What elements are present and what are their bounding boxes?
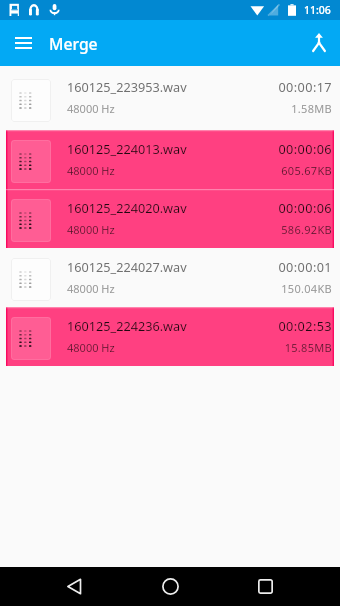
staticText: 48000 Hz [67,163,115,178]
staticText: 160125_224013.wav [67,140,187,157]
staticText: 48000 Hz [67,222,115,237]
staticText: 48000 Hz [67,281,115,296]
staticText: 160125_224236.wav [67,317,187,334]
button[interactable]: 160125_224236.wav [6,307,334,366]
button[interactable]: Open navigation drawer [6,26,40,60]
staticText: 00:00:06 [278,199,332,216]
staticText: 586.92KB [281,222,332,237]
staticText: 11:06 [304,3,331,17]
button[interactable]: Recent apps [243,567,288,606]
staticText: 605.67KB [281,163,332,178]
button[interactable]: Home [148,567,193,606]
button[interactable]: 160125_224027.wav [6,248,334,307]
staticText: 15.85MB [284,340,332,355]
staticText: 160125_223953.wav [67,78,187,95]
staticText: 160125_224027.wav [67,258,187,275]
staticText: 160125_224020.wav [67,199,187,216]
button[interactable]: 160125_223953.wav [6,66,334,130]
button[interactable]: Merge selected files [301,25,337,61]
button[interactable]: 160125_224013.wav [6,130,334,189]
staticText: 1.58MB [291,101,332,116]
staticText: 48000 Hz [67,101,115,116]
staticText: 150.04KB [281,281,332,296]
button[interactable]: Back [52,567,97,606]
button[interactable]: 160125_224020.wav [6,189,334,248]
staticText: 00:00:01 [278,258,332,275]
staticText: 00:00:17 [278,78,332,95]
staticText: 48000 Hz [67,340,115,355]
staticText: 00:02:53 [278,317,332,334]
staticText: Merge [49,33,98,54]
staticText: 00:00:06 [278,140,332,157]
